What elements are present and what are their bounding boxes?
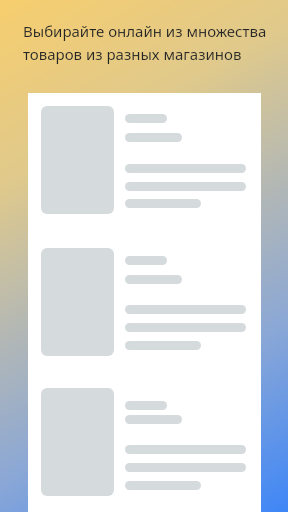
staticText: Выбирайте онлайн из множества товаров из…: [23, 21, 267, 64]
